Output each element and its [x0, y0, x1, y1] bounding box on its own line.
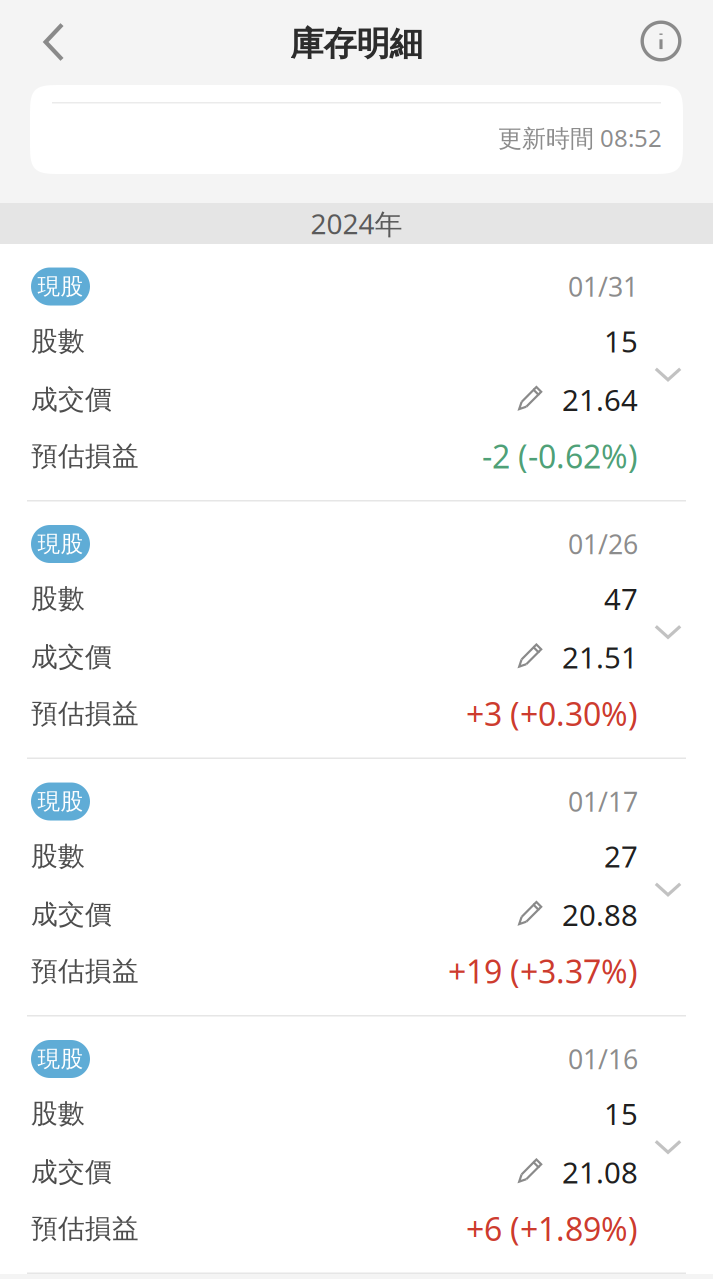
staticText: 股數	[31, 324, 85, 358]
staticText: 股數	[31, 1097, 85, 1130]
staticText: 更新時間 08:52	[498, 121, 662, 154]
staticText: 預估損益	[31, 1212, 139, 1245]
staticText: 15	[604, 1093, 638, 1133]
button[interactable]: Back	[21, 0, 83, 82]
staticText: 庫存明細	[290, 23, 422, 65]
staticText: 27	[604, 836, 638, 876]
staticText: 股數	[31, 582, 85, 615]
button[interactable]: 現股	[0, 501, 713, 759]
staticText: 20.88	[562, 894, 638, 934]
button[interactable]: Information	[630, 0, 692, 82]
staticText: -2 (-0.62%)	[482, 434, 638, 478]
staticText: 成交價	[31, 1155, 112, 1189]
staticText: 01/26	[568, 526, 638, 562]
staticText: 現股	[37, 787, 83, 816]
staticText: +6 (+1.89%)	[466, 1207, 638, 1250]
staticText: 現股	[37, 1045, 83, 1073]
staticText: 47	[604, 578, 638, 618]
staticText: 15	[604, 321, 638, 361]
button[interactable]: 現股	[0, 244, 713, 501]
staticText: 01/17	[568, 783, 638, 820]
staticText: 21.51	[562, 637, 638, 677]
staticText: 01/31	[568, 268, 638, 305]
staticText: +3 (+0.30%)	[466, 692, 638, 735]
staticText: 成交價	[31, 383, 112, 416]
staticText: 成交價	[31, 640, 112, 674]
staticText: 股數	[31, 839, 85, 873]
staticText: 成交價	[31, 898, 112, 931]
staticText: 預估損益	[31, 954, 139, 988]
staticText: 現股	[37, 530, 83, 558]
staticText: +19 (+3.37%)	[448, 949, 638, 993]
staticText: 現股	[37, 272, 83, 301]
staticText: 01/16	[568, 1041, 638, 1077]
staticText: 21.08	[562, 1152, 638, 1192]
button[interactable]: 現股	[0, 759, 713, 1016]
staticText: 預估損益	[31, 697, 139, 730]
staticText: 預估損益	[31, 439, 139, 473]
staticText: 2024年	[310, 204, 402, 242]
staticText: 21.64	[562, 379, 638, 419]
button[interactable]: 現股	[0, 1016, 713, 1274]
